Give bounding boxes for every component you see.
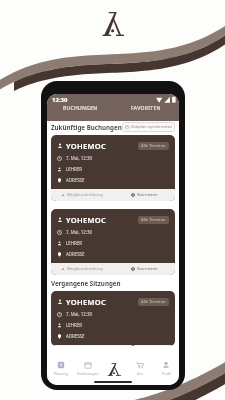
staticText: Zeitplan synchronisieren [131, 124, 172, 130]
button[interactable]: Wegbeschreibung [51, 263, 113, 275]
staticText: Stornieren [137, 192, 158, 198]
staticText: BUCHUNGEN [63, 105, 98, 112]
button[interactable]: BUCHUNGEN [47, 105, 113, 112]
staticText: Wegbeschreibung [67, 192, 103, 198]
staticText: Alle Termine [141, 299, 166, 305]
staticText: Alle Termine [141, 217, 166, 223]
button[interactable]: Alle Termine [138, 142, 169, 150]
staticText: FAVORITEN [131, 105, 161, 112]
staticText: YOHEMOC [66, 215, 107, 225]
button[interactable]: Stornieren [113, 189, 175, 201]
button[interactable]: FAVORITEN [113, 105, 179, 112]
button[interactable]: Home [104, 359, 125, 379]
button[interactable]: Planung [47, 361, 74, 376]
staticText: Rechnungen [77, 371, 99, 376]
staticText: LEHRER [66, 240, 82, 246]
button[interactable]: Alle Termine [138, 298, 169, 306]
staticText: 7. Mai, 12:30 [66, 311, 92, 317]
button[interactable]: YOHEMOC [51, 135, 175, 201]
button[interactable]: Rechnungen [74, 361, 101, 376]
staticText: ADRESSE [66, 177, 85, 183]
staticText: YOHEMOC [66, 141, 107, 151]
staticText: Stornieren [137, 266, 158, 272]
staticText: 12:30 [52, 96, 68, 104]
button[interactable]: Profil [153, 361, 179, 376]
button[interactable]: Stornieren [113, 263, 175, 275]
staticText: Zukünftige Buchungen [51, 123, 122, 131]
staticText: Planung [54, 371, 68, 376]
staticText: Alle Termine [141, 143, 166, 149]
staticText: Kur [137, 371, 143, 376]
button[interactable]: Alle Termine [138, 216, 169, 224]
button[interactable]: Kur [127, 361, 153, 376]
button[interactable]: Wegbeschreibung [51, 189, 113, 201]
button[interactable]: YOHEMOC [51, 209, 175, 275]
button[interactable]: Wegbeschreibung [51, 345, 113, 346]
staticText: 7. Mai, 12:30 [66, 229, 92, 235]
staticText: ADRESSE [66, 333, 85, 339]
staticText: LEHRER [66, 322, 82, 328]
staticText: ADRESSE [66, 251, 85, 257]
staticText: Vergangene Sitzungen [51, 279, 121, 287]
staticText: LEHRER [66, 166, 82, 172]
button[interactable]: Zeitplan synchronisieren [122, 122, 175, 132]
button[interactable]: YOHEMOC [51, 291, 175, 346]
staticText: Wegbeschreibung [67, 266, 103, 272]
staticText: YOHEMOC [66, 297, 107, 307]
staticText: Profil [162, 371, 171, 376]
button[interactable]: Stornieren [113, 345, 175, 346]
staticText: 7. Mai, 12:30 [66, 155, 92, 161]
